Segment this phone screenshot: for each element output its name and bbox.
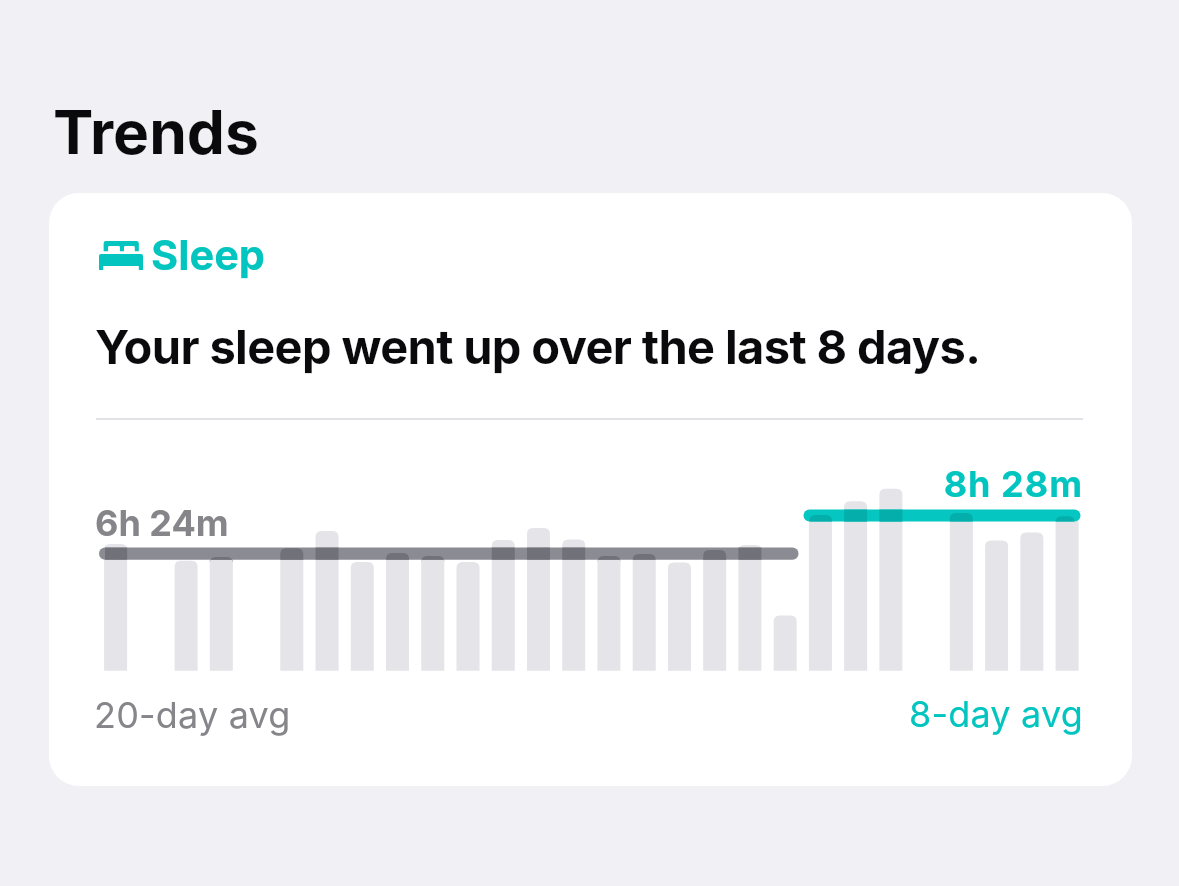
other: Sleep (99, 241, 143, 270)
staticText: Your sleep went up over the last 8 days. (95, 318, 981, 375)
staticText: 6h 24m (95, 501, 229, 545)
staticText: Trends (53, 95, 259, 168)
staticText: 20-day avg (94, 693, 291, 737)
staticText: Sleep (151, 230, 266, 280)
staticText: 8-day avg (700, 692, 1083, 736)
button[interactable]: Sleep (49, 193, 1132, 786)
staticText: 8h 28m (800, 462, 1083, 506)
